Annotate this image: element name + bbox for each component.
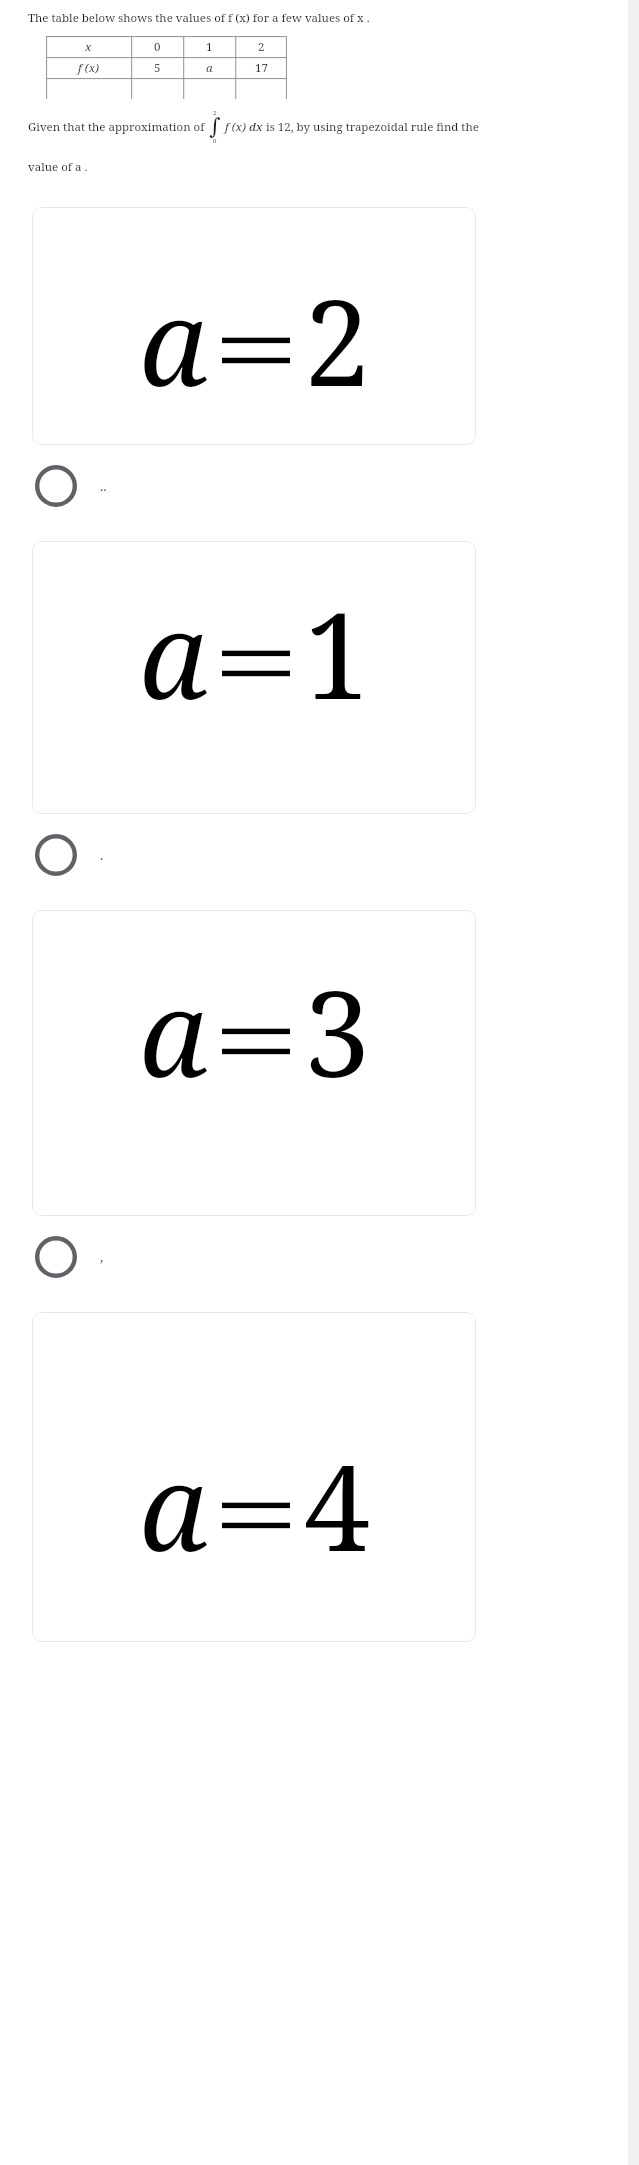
staticText: 17 xyxy=(255,60,268,76)
staticText: 1 xyxy=(304,573,370,734)
staticText: is 12, by using trapezoidal rule find th… xyxy=(263,119,479,135)
button[interactable]: a xyxy=(32,207,476,445)
staticText: , xyxy=(100,1248,104,1266)
staticText: 0 xyxy=(154,39,161,55)
staticText: x xyxy=(85,39,92,55)
staticText: 2 xyxy=(258,39,265,55)
staticText: 2 xyxy=(304,260,370,421)
staticText: .. xyxy=(100,477,107,495)
staticText: a xyxy=(206,60,213,76)
staticText: f (x) xyxy=(78,60,99,76)
staticText: 3 xyxy=(304,951,370,1112)
staticText: f (x) xyxy=(222,119,249,135)
staticText: 0 xyxy=(213,137,217,145)
button[interactable]: a xyxy=(32,910,476,1216)
button[interactable]: Option a = 1 xyxy=(0,826,639,884)
button[interactable]: a xyxy=(32,541,476,814)
staticText: The table below shows the values of f (x… xyxy=(28,10,370,26)
staticText: 1 xyxy=(206,39,213,55)
staticText: a xyxy=(139,1425,208,1586)
staticText: 2 xyxy=(213,109,217,117)
button[interactable]: Option a = 2 xyxy=(0,457,639,515)
staticText: value of a . xyxy=(28,159,88,175)
staticText: 4 xyxy=(304,1425,370,1586)
staticText: dx xyxy=(249,119,263,135)
staticText: a xyxy=(139,951,208,1112)
staticText: 5 xyxy=(154,60,161,76)
staticText: a xyxy=(139,573,208,734)
staticText: Given that the approximation of xyxy=(28,119,208,135)
button[interactable]: a xyxy=(32,1312,476,1642)
staticText: a xyxy=(139,260,208,421)
button[interactable]: Option a = 3 xyxy=(0,1228,639,1286)
staticText: ∫ xyxy=(209,114,221,140)
staticText: . xyxy=(100,846,104,864)
